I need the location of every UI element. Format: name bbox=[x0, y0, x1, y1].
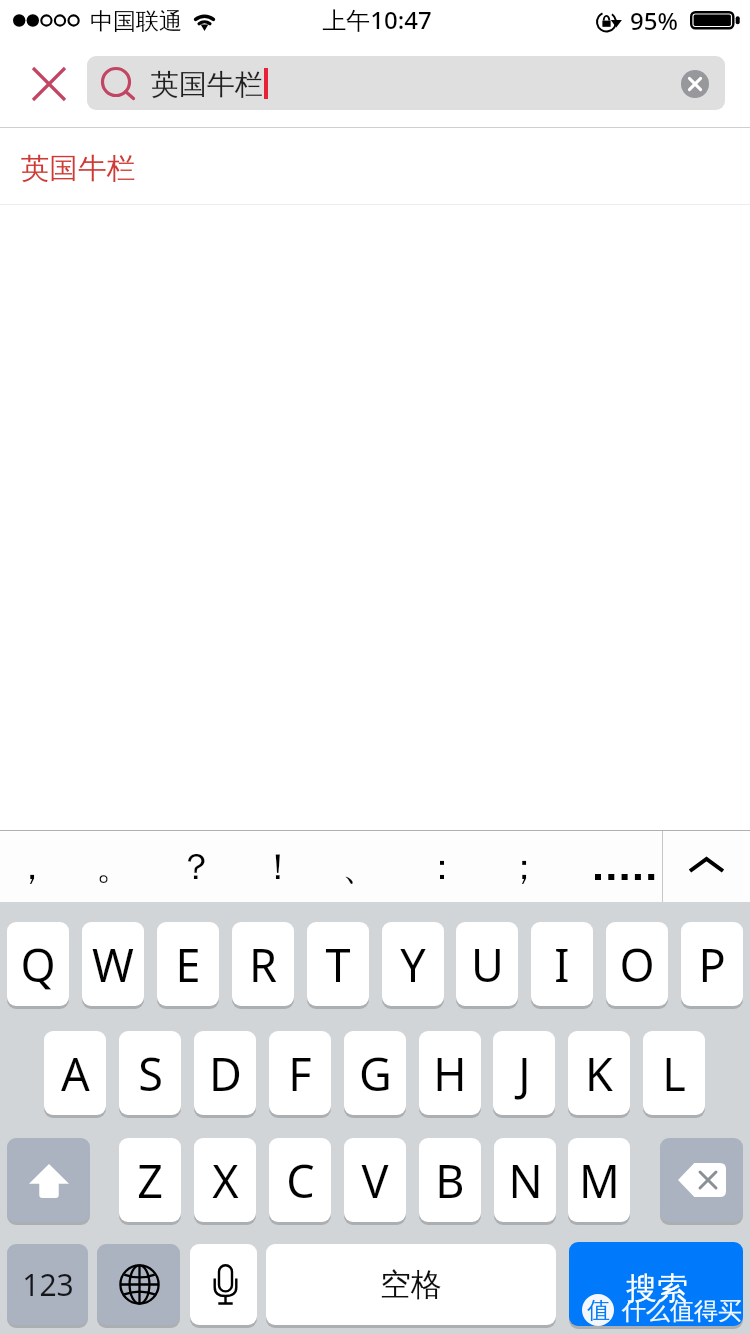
button[interactable]: T bbox=[307, 922, 369, 1006]
button[interactable]: Y bbox=[382, 922, 444, 1006]
button[interactable]: Hide keyboard bbox=[663, 830, 750, 902]
staticText: O bbox=[619, 934, 655, 995]
button[interactable]: B bbox=[419, 1138, 481, 1222]
button[interactable]: Switch keyboard language bbox=[97, 1244, 180, 1325]
button[interactable]: G bbox=[344, 1031, 406, 1115]
staticText: 英国牛栏 bbox=[21, 151, 135, 187]
button[interactable]: O bbox=[606, 922, 668, 1006]
staticText: ！ bbox=[260, 844, 296, 889]
staticText: 英国牛栏 bbox=[151, 67, 263, 102]
button[interactable]: ， bbox=[0, 830, 73, 902]
staticText: I bbox=[554, 934, 570, 995]
staticText: R bbox=[249, 934, 277, 995]
staticText: ； bbox=[506, 844, 542, 889]
button[interactable]: Backspace bbox=[660, 1138, 743, 1222]
button[interactable]: J bbox=[493, 1031, 555, 1115]
staticText: J bbox=[518, 1043, 531, 1104]
button[interactable]: W bbox=[82, 922, 144, 1006]
button[interactable]: L bbox=[643, 1031, 705, 1115]
button[interactable]: Shift bbox=[7, 1138, 90, 1222]
staticText: Q bbox=[20, 934, 56, 995]
staticText: U bbox=[471, 934, 504, 995]
button[interactable]: V bbox=[344, 1138, 406, 1222]
button[interactable]: Q bbox=[7, 922, 69, 1006]
button[interactable]: 空格 bbox=[266, 1244, 556, 1325]
button[interactable]: ！ bbox=[237, 830, 319, 902]
staticText: V bbox=[361, 1150, 389, 1211]
staticText: K bbox=[585, 1043, 613, 1104]
button[interactable]: S bbox=[119, 1031, 181, 1115]
staticText: W bbox=[92, 934, 134, 995]
button[interactable]: ： bbox=[401, 830, 483, 902]
button[interactable]: 搜索 bbox=[569, 1242, 743, 1326]
staticText: N bbox=[508, 1150, 543, 1211]
staticText: X bbox=[212, 1150, 239, 1211]
button[interactable]: Z bbox=[119, 1138, 181, 1222]
button[interactable]: 英国牛栏 bbox=[87, 56, 725, 110]
staticText: C bbox=[286, 1150, 315, 1211]
staticText: 什么值得买 bbox=[622, 1296, 742, 1326]
button[interactable]: Clear text bbox=[681, 70, 709, 98]
staticText: ， bbox=[14, 844, 50, 889]
staticText: H bbox=[433, 1043, 467, 1104]
staticText: 空格 bbox=[380, 1265, 442, 1304]
staticText: 95% bbox=[630, 4, 678, 37]
button[interactable]: E bbox=[157, 922, 219, 1006]
button[interactable]: ？ bbox=[155, 830, 237, 902]
button[interactable]: N bbox=[494, 1138, 556, 1222]
staticText: 搜索 bbox=[626, 1269, 688, 1308]
staticText: M bbox=[579, 1150, 620, 1211]
staticText: ？ bbox=[178, 844, 214, 889]
button[interactable]: C bbox=[269, 1138, 331, 1222]
button[interactable]: U bbox=[456, 922, 518, 1006]
button[interactable]: M bbox=[568, 1138, 630, 1222]
staticText: D bbox=[209, 1043, 242, 1104]
staticText: 值 bbox=[587, 1296, 610, 1325]
staticText: ： bbox=[424, 844, 460, 889]
staticText: B bbox=[435, 1150, 465, 1211]
staticText: 。 bbox=[96, 844, 132, 889]
staticText: Y bbox=[400, 934, 426, 995]
staticText: E bbox=[175, 934, 201, 995]
button[interactable]: 123 bbox=[7, 1244, 88, 1325]
staticText: 上午10:47 bbox=[322, 3, 432, 36]
staticText: P bbox=[698, 934, 726, 995]
button[interactable]: F bbox=[269, 1031, 331, 1115]
button[interactable]: Close search bbox=[10, 46, 88, 122]
button[interactable]: ； bbox=[483, 830, 565, 902]
button[interactable]: 英国牛栏 bbox=[0, 128, 750, 204]
staticText: 123 bbox=[22, 1264, 74, 1305]
staticText: 中国联通 bbox=[90, 7, 182, 36]
staticText: G bbox=[359, 1043, 392, 1104]
button[interactable]: 。 bbox=[73, 830, 155, 902]
button[interactable]: D bbox=[194, 1031, 256, 1115]
button[interactable]: R bbox=[232, 922, 294, 1006]
staticText: F bbox=[288, 1043, 312, 1104]
staticText: S bbox=[138, 1043, 163, 1104]
button[interactable]: More symbols bbox=[574, 830, 662, 902]
button[interactable]: X bbox=[194, 1138, 256, 1222]
staticText: Z bbox=[137, 1150, 163, 1211]
staticText: T bbox=[325, 934, 351, 995]
button[interactable]: A bbox=[44, 1031, 106, 1115]
staticText: L bbox=[662, 1043, 686, 1104]
button[interactable]: 、 bbox=[319, 830, 401, 902]
button[interactable]: P bbox=[681, 922, 743, 1006]
button[interactable]: K bbox=[568, 1031, 630, 1115]
staticText: A bbox=[61, 1043, 90, 1104]
button[interactable]: I bbox=[531, 922, 593, 1006]
button[interactable]: Voice input bbox=[190, 1244, 257, 1325]
button[interactable]: H bbox=[419, 1031, 481, 1115]
staticText: 、 bbox=[342, 844, 378, 889]
